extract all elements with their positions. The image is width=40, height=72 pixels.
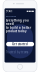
staticText: Get started — [12, 42, 28, 46]
button[interactable]: Get started — [6, 42, 34, 46]
staticText: Trusted by teams — [6, 50, 28, 54]
staticText: 9:41 — [6, 9, 13, 13]
staticText: GET STARTED — [6, 16, 16, 17]
staticText: Everything you need to build a better pr… — [6, 19, 31, 33]
